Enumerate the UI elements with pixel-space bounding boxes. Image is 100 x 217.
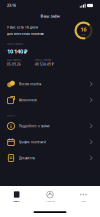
staticText: Подробнее о займе <box>19 124 50 128</box>
button[interactable]: Подробнее о займе <box>0 118 100 134</box>
button[interactable]: Автооплата <box>0 92 100 108</box>
staticText: Дата платежа <box>7 58 21 61</box>
button[interactable]: График платежей <box>0 134 100 150</box>
staticText: Профиль <box>45 199 54 203</box>
staticText: Займы <box>13 199 20 203</box>
staticText: Ещё <box>81 199 85 203</box>
staticText: дней <box>81 33 85 36</box>
button[interactable]: Профиль <box>33 191 67 203</box>
button[interactable]: Внести платёж <box>0 76 100 92</box>
staticText: 40 534.49 ₽ <box>35 62 54 66</box>
button[interactable]: Документы <box>0 150 100 166</box>
staticText: 23:16 <box>7 3 16 8</box>
staticText: для внесения платежа <box>7 32 44 36</box>
staticText: Сумма списания <box>35 58 51 61</box>
staticText: Документы <box>19 156 35 160</box>
staticText: 05.09.26 <box>7 62 21 66</box>
staticText: ДЕТАЛИ <box>7 114 16 117</box>
staticText: Внести платёж <box>19 82 41 86</box>
staticText: 10 140 ₽ <box>7 47 27 55</box>
staticText: Сумма платежа <box>7 42 23 45</box>
button[interactable]: Ещё <box>67 191 100 203</box>
staticText: 16 <box>80 26 86 33</box>
staticText: У Вас есть 18 дней <box>7 25 38 29</box>
staticText: Автооплата <box>19 98 37 102</box>
staticText: Ваш заём <box>40 13 59 19</box>
button[interactable]: Займы <box>0 191 33 203</box>
staticText: График платежей <box>19 140 46 144</box>
